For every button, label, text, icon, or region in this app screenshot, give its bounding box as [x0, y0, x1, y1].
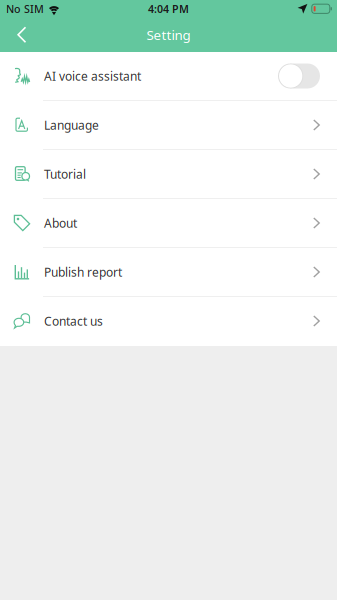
- staticText: 4:04 PM: [148, 2, 189, 16]
- button[interactable]: AI voice assistant: [0, 52, 337, 101]
- staticText: Contact us: [44, 313, 103, 329]
- button[interactable]: Tutorial: [0, 150, 337, 199]
- staticText: No SIM: [6, 2, 44, 16]
- button[interactable]: About: [0, 199, 337, 248]
- staticText: Language: [44, 117, 99, 133]
- button[interactable]: Back: [0, 19, 44, 51]
- staticText: Publish report: [44, 264, 122, 280]
- staticText: Setting: [146, 26, 190, 44]
- button[interactable]: Publish report: [0, 248, 337, 297]
- button[interactable]: Contact us: [0, 297, 337, 346]
- button[interactable]: Language: [0, 101, 337, 150]
- staticText: Tutorial: [44, 166, 86, 182]
- staticText: About: [44, 215, 77, 231]
- staticText: AI voice assistant: [44, 68, 141, 84]
